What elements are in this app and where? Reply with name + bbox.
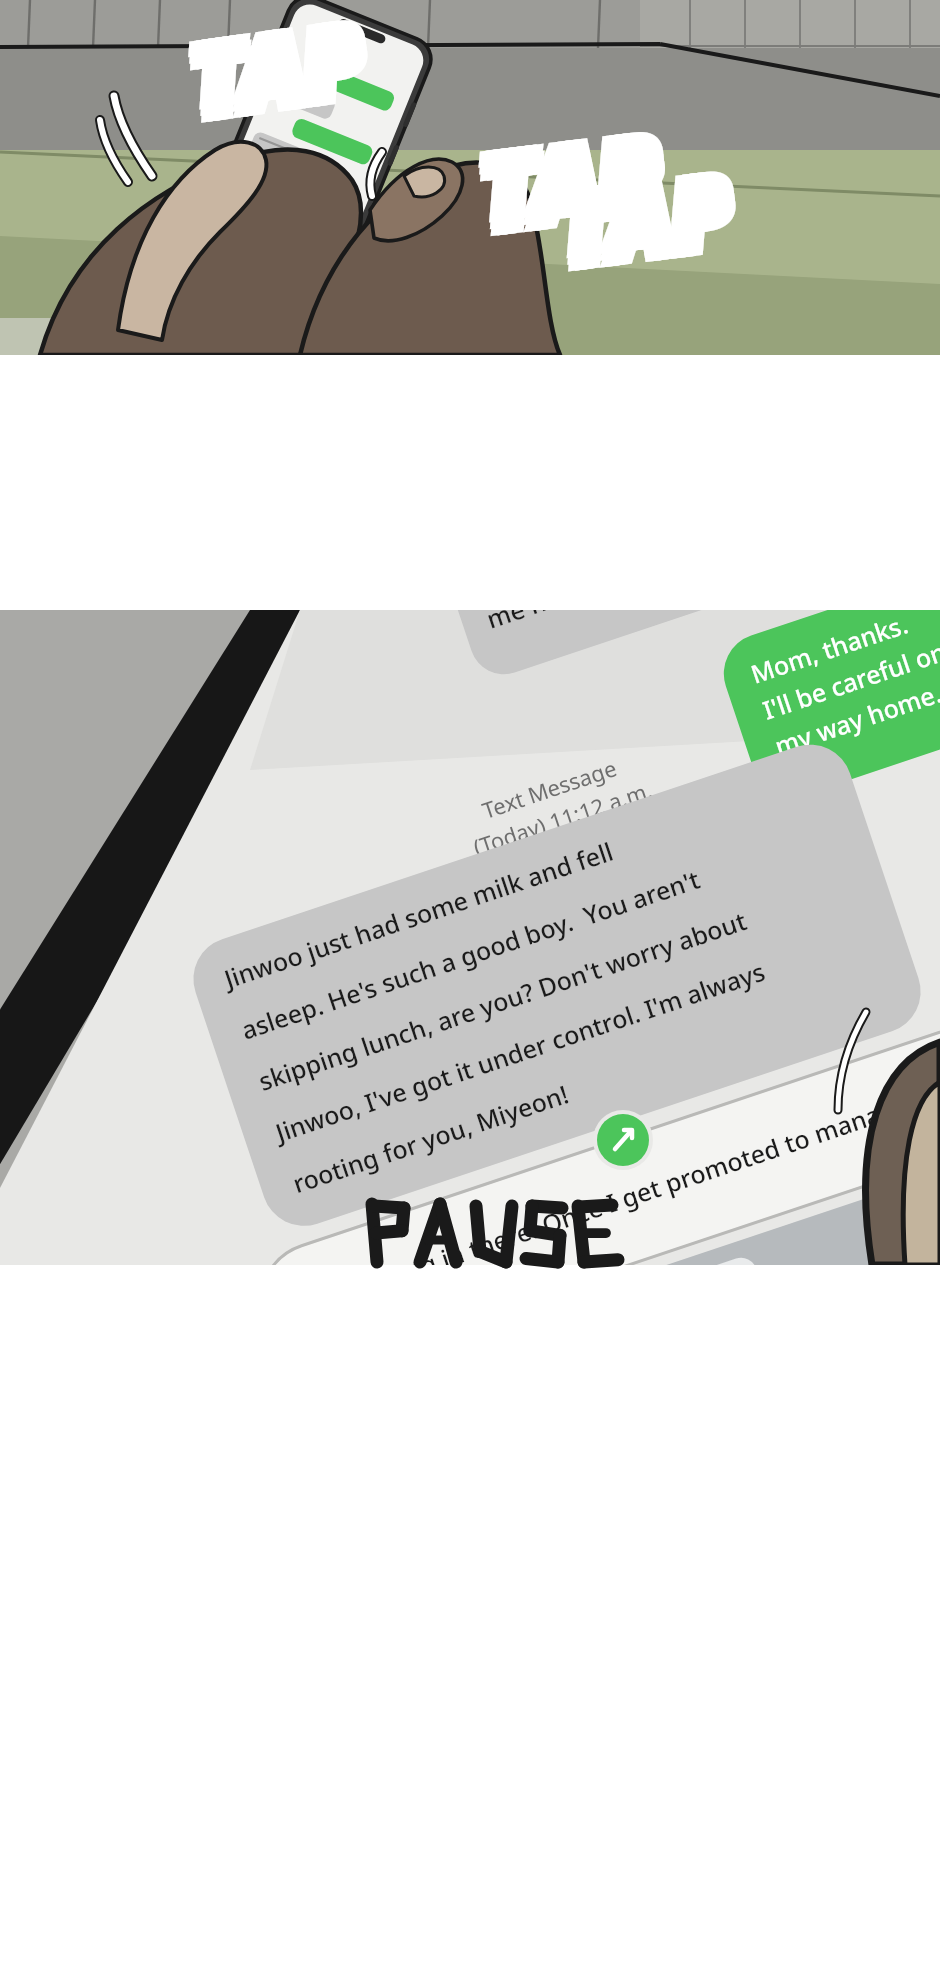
button[interactable]: Webtoon episode page — [0, 0, 940, 1979]
